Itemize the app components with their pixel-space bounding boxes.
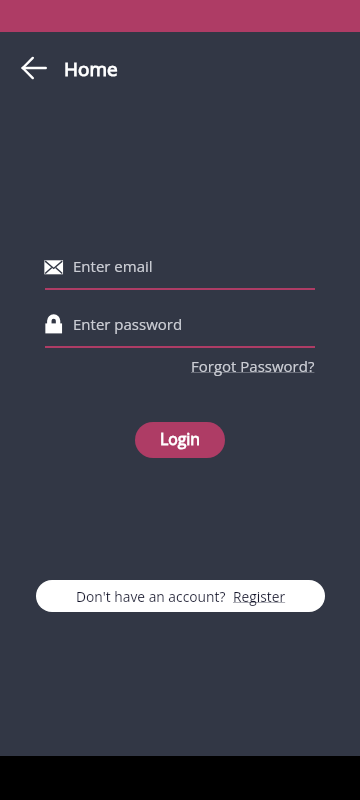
button[interactable]: Forgot Password? bbox=[191, 356, 315, 376]
staticText: Don't have an account? bbox=[76, 587, 233, 606]
button[interactable]: Enter password bbox=[45, 313, 315, 348]
staticText: Home bbox=[64, 56, 118, 82]
staticText: Forgot Password? bbox=[191, 356, 315, 376]
button[interactable]: Don't have an account? bbox=[36, 580, 325, 612]
button[interactable]: Login bbox=[135, 422, 225, 458]
button[interactable]: Back bbox=[12, 46, 56, 90]
button[interactable]: Enter email bbox=[45, 255, 315, 290]
staticText: Register bbox=[233, 587, 286, 606]
staticText: Enter password bbox=[73, 314, 183, 334]
staticText: Enter email bbox=[73, 256, 153, 276]
staticText: Login bbox=[160, 428, 201, 450]
